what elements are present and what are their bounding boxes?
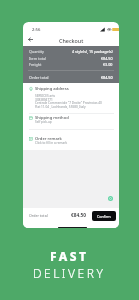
button[interactable]: Shipping method: [29, 115, 89, 121]
staticText: 4 style(s), 15 package(s): [72, 49, 113, 54]
staticText: DELIVERY: [33, 265, 106, 281]
staticText: Order remark: [35, 136, 62, 142]
staticText: Checkout: [59, 37, 84, 44]
staticText: Item total: [29, 56, 46, 61]
staticText: Shipping address: [35, 86, 69, 92]
staticText: Order total: [29, 75, 49, 80]
staticText: €84.50: [71, 212, 87, 219]
button[interactable]: Customer service: [108, 196, 113, 201]
staticText: €84.50: [101, 56, 113, 61]
staticText: Shipping method: [35, 115, 69, 121]
staticText: Order total: [29, 213, 48, 218]
button[interactable]: Back: [25, 34, 36, 45]
staticText: FAST: [50, 248, 89, 264]
button[interactable]: Order remark: [29, 136, 89, 142]
staticText: SERVICES arts: [35, 94, 56, 98]
staticText: Click to fill in a remark: [35, 141, 68, 145]
staticText: 3383894771: [35, 98, 53, 102]
staticText: Quantity: [29, 49, 45, 54]
staticText: Flat 11.04 , Lochhands, 55580, Italy: [35, 105, 86, 109]
staticText: 2:56: [32, 27, 41, 33]
staticText: Freight: [29, 62, 42, 67]
staticText: Confirm: [97, 214, 111, 219]
button[interactable]: Confirm: [92, 211, 116, 221]
staticText: €84.50: [101, 75, 113, 80]
staticText: Centrale Commerciale "7 Droite" Provinci…: [35, 101, 102, 105]
button[interactable]: Shipping address: [29, 86, 89, 92]
staticText: €3.00: [103, 62, 113, 67]
staticText: Self pick-up: [35, 120, 52, 124]
